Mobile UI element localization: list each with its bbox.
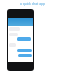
button[interactable]: Chat app bar bbox=[8, 18, 33, 26]
button[interactable] bbox=[17, 49, 32, 52]
button[interactable] bbox=[18, 54, 32, 57]
staticText: a quick chat app bbox=[20, 2, 45, 6]
button[interactable] bbox=[9, 43, 16, 47]
button[interactable] bbox=[17, 37, 31, 41]
button[interactable] bbox=[9, 33, 18, 36]
